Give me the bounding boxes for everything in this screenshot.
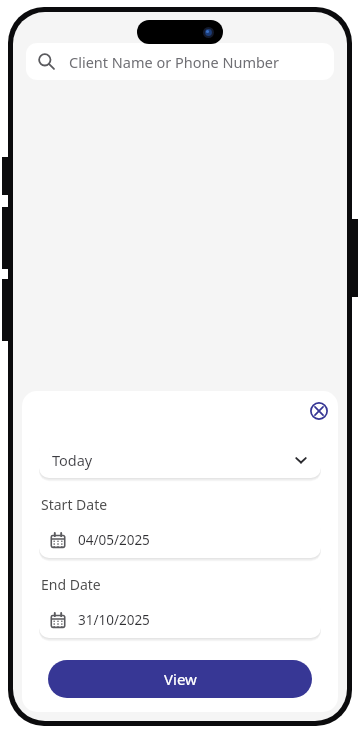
staticText: Client Name or Phone Number <box>69 52 280 72</box>
staticText: End Date <box>41 575 101 594</box>
button[interactable]: Today <box>39 441 321 478</box>
staticText: Today <box>52 450 93 470</box>
button[interactable]: View <box>48 660 312 698</box>
staticText: View <box>164 669 197 689</box>
staticText: Start Date <box>41 495 108 514</box>
button[interactable]: Client Name or Phone Number <box>26 43 334 80</box>
staticText: 31/10/2025 <box>78 611 150 629</box>
button[interactable]: Close <box>307 399 330 422</box>
button[interactable]: 31/10/2025 <box>39 601 321 638</box>
button[interactable]: 04/05/2025 <box>39 521 321 558</box>
staticText: 04/05/2025 <box>78 531 150 549</box>
